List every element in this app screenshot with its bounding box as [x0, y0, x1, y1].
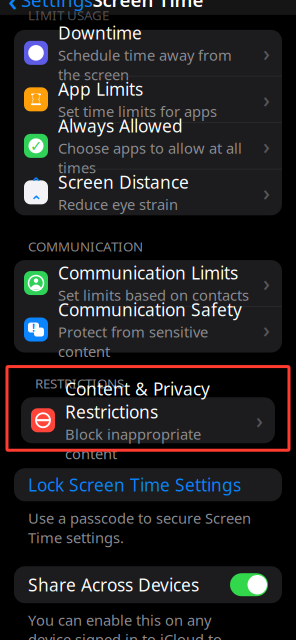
staticText: Communication Limits	[58, 261, 238, 284]
staticText: ›	[263, 132, 270, 160]
staticText: Content & Privacy Restrictions	[65, 377, 210, 423]
staticText: Protect from sensitive content	[58, 322, 208, 361]
staticText: Screen Distance	[58, 171, 189, 194]
staticText: ›	[263, 178, 270, 206]
button[interactable]: !	[14, 307, 282, 353]
staticText: LIMIT USAGE	[28, 6, 109, 24]
button[interactable]: Lock Screen Time Settings	[14, 468, 282, 501]
staticText: Communication Safety	[58, 298, 242, 321]
staticText: Choose apps to allow at all times	[58, 138, 242, 177]
staticText: ⌃	[30, 175, 42, 192]
staticText: Screen Time	[92, 0, 203, 12]
button[interactable]: Communication Limits	[14, 260, 282, 306]
staticText: Lock Screen Time Settings	[28, 473, 241, 496]
staticText: COMMUNICATION	[28, 237, 143, 255]
staticText: Settings	[21, 0, 93, 12]
staticText: ›	[263, 269, 270, 297]
staticText: RESTRICTIONS	[35, 375, 124, 392]
staticText: ✓	[30, 137, 42, 154]
button[interactable]: Share Across Devices	[230, 573, 268, 596]
staticText: ⌃	[30, 193, 42, 210]
staticText: Use a passcode to secure Screen Time set…	[28, 508, 251, 547]
staticText: You can enable this on any device signed…	[28, 610, 222, 640]
staticText: Always Allowed	[58, 114, 183, 137]
staticText: Schedule time away from the screen	[58, 45, 232, 84]
staticText: Block inappropriate content	[65, 424, 201, 463]
staticText: Downtime	[58, 21, 142, 44]
staticText: Share Across Devices	[28, 573, 199, 596]
staticText: ›	[256, 406, 263, 434]
staticText: ›	[263, 315, 270, 344]
staticText: !	[32, 320, 35, 335]
staticText: ›	[263, 39, 270, 67]
staticText: Set limits based on contacts	[58, 285, 249, 305]
staticText: ‹	[8, 0, 18, 19]
staticText: ›	[263, 85, 270, 113]
button[interactable]: ⌃	[14, 169, 282, 215]
button[interactable]: ✓	[14, 123, 282, 169]
button[interactable]: Downtime	[14, 30, 282, 76]
staticText: App Limits	[58, 78, 143, 101]
staticText: Reduce eye strain	[58, 195, 178, 214]
button[interactable]: Content & Privacy Restrictions	[21, 397, 275, 443]
button[interactable]: ‹	[0, 0, 93, 22]
staticText: Set time limits for apps	[58, 102, 217, 121]
button[interactable]: App Limits	[14, 76, 282, 122]
